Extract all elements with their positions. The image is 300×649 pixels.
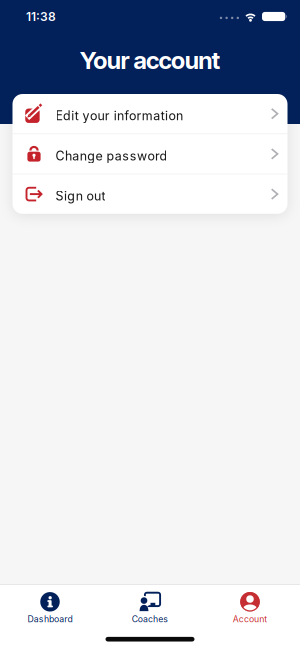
staticText: Coaches [132, 614, 168, 624]
staticText: Account [233, 614, 267, 624]
button[interactable]: Account [200, 592, 300, 624]
button[interactable]: Sign out [12, 174, 287, 214]
staticText: Edit your information [55, 108, 183, 123]
staticText: Change password [55, 148, 167, 163]
staticText: Your account [79, 46, 220, 75]
button[interactable]: Edit your information [12, 94, 287, 133]
button[interactable]: Dashboard [0, 592, 100, 624]
staticText: Sign out [55, 189, 105, 204]
staticText: 11:38 [26, 9, 56, 24]
staticText: Dashboard [28, 614, 72, 624]
button[interactable]: Change password [12, 134, 287, 174]
button[interactable]: Coaches [100, 592, 200, 624]
